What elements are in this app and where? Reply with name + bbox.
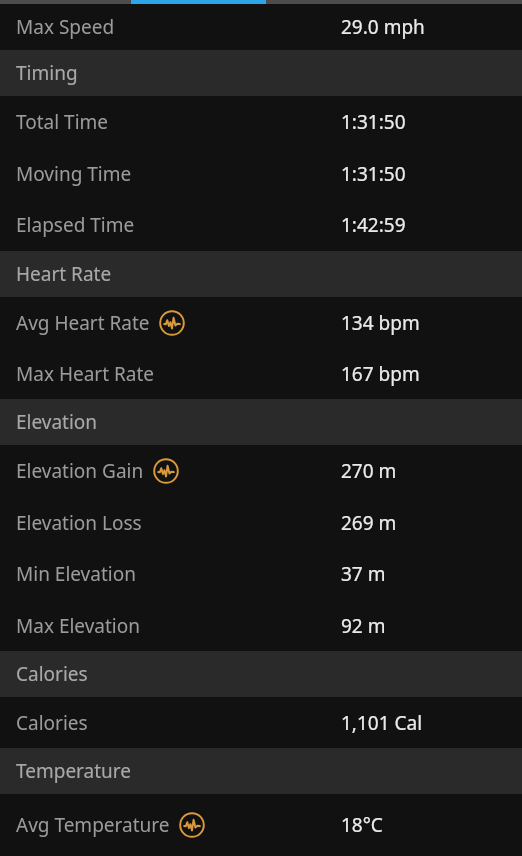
button[interactable]: Min Elevation	[0, 548, 522, 600]
staticText: Max Heart Rate	[16, 361, 155, 387]
button[interactable]: Avg Temperature	[0, 794, 522, 856]
staticText: 37 m	[341, 561, 386, 587]
staticText: Total Time	[16, 109, 109, 135]
button[interactable]: Elevation	[0, 399, 522, 445]
staticText: Timing	[16, 60, 78, 86]
staticText: Heart Rate	[16, 261, 112, 287]
staticText: 1,101 Cal	[341, 710, 423, 736]
other: Sensor data source	[179, 812, 205, 838]
staticText: 269 m	[341, 510, 397, 536]
staticText: 29.0 mph	[341, 14, 425, 40]
staticText: Avg Heart Rate	[16, 310, 150, 336]
staticText: Min Elevation	[16, 561, 136, 587]
staticText: Calories	[16, 661, 88, 687]
staticText: 270 m	[341, 458, 397, 484]
button[interactable]: Temperature	[0, 748, 522, 794]
staticText: Temperature	[16, 758, 132, 784]
button[interactable]: Max Heart Rate	[0, 349, 522, 399]
button[interactable]: Elapsed Time	[0, 199, 522, 251]
staticText: Elevation Gain	[16, 458, 144, 484]
staticText: Moving Time	[16, 161, 132, 187]
staticText: 1:42:59	[341, 212, 406, 238]
staticText: Max Speed	[16, 14, 115, 40]
staticText: Avg Temperature	[16, 812, 170, 838]
button[interactable]: Total Time	[0, 96, 522, 148]
button[interactable]: Calories	[0, 697, 522, 748]
button[interactable]: Calories	[0, 651, 522, 697]
staticText: 1:31:50	[341, 161, 406, 187]
button[interactable]: Elevation Loss	[0, 497, 522, 548]
button[interactable]: Max Elevation	[0, 600, 522, 651]
staticText: 1:31:50	[341, 109, 406, 135]
other: Sensor data source	[159, 310, 185, 336]
staticText: 92 m	[341, 613, 386, 639]
staticText: Elevation	[16, 409, 98, 435]
button[interactable]: Moving Time	[0, 148, 522, 199]
staticText: Max Elevation	[16, 613, 140, 639]
other: Sensor data source	[153, 458, 179, 484]
button[interactable]: Elevation Gain	[0, 445, 522, 497]
button[interactable]: Avg Heart Rate	[0, 297, 522, 349]
staticText: 18°C	[341, 812, 383, 838]
button[interactable]: Heart Rate	[0, 251, 522, 297]
staticText: 167 bpm	[341, 361, 420, 387]
button[interactable]: Max Speed	[0, 4, 522, 50]
button[interactable]: Timing	[0, 50, 522, 96]
staticText: 134 bpm	[341, 310, 420, 336]
staticText: Elevation Loss	[16, 510, 142, 536]
staticText: Calories	[16, 710, 88, 736]
staticText: Elapsed Time	[16, 212, 135, 238]
